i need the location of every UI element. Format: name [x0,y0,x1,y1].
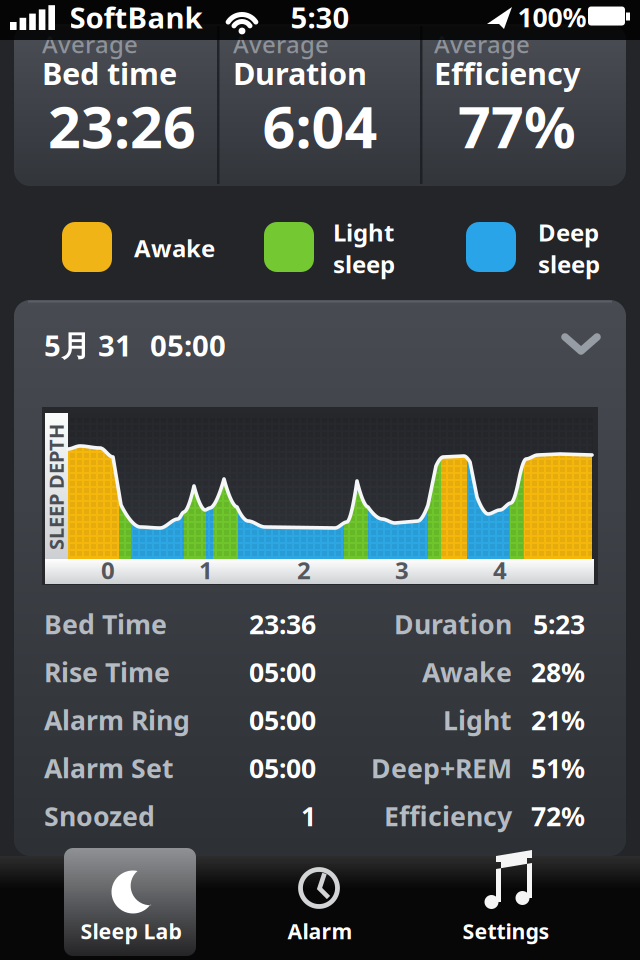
button[interactable]: Settings [406,848,606,960]
staticText: 21% [531,702,585,738]
staticText: 05:00 [249,654,316,690]
staticText: Efficiency [384,798,512,834]
staticText: Alarm [287,917,352,945]
staticText: 05:00 [249,702,316,738]
staticText: Alarm Set [44,750,174,786]
staticText: 2 [297,554,311,586]
staticText: Average [42,28,138,60]
staticText: 5:23 [533,606,585,642]
staticText: Awake [422,654,512,690]
staticText: Rise Time [44,654,170,690]
staticText: 5月 31 [44,325,132,364]
staticText: Duration [394,606,512,642]
staticText: 1 [301,798,316,834]
staticText: Bed Time [44,606,167,642]
staticText: 5:30 [290,0,349,36]
staticText: 51% [531,750,585,786]
staticText: 1 [199,554,213,586]
staticText: 6:04 [262,88,377,164]
staticText: 23:36 [249,606,316,642]
staticText: Bed time [42,53,177,93]
staticText: SLEEP DEPTH [0,474,119,500]
staticText: 3 [395,554,409,586]
staticText: 05:00 [150,325,226,364]
staticText: Average [434,28,530,60]
staticText: Awake [134,232,215,264]
staticText: Average [233,28,329,60]
button[interactable]: Alarm [220,848,420,960]
staticText: 28% [531,654,585,690]
button[interactable]: 5月 31 [14,315,626,375]
staticText: 4 [493,554,507,586]
staticText: 05:00 [249,750,316,786]
staticText: 77% [458,88,576,164]
staticText: Snoozed [44,798,155,834]
staticText: Settings [462,917,549,945]
staticText: 100% [517,0,586,35]
staticText: Sleep Lab [80,917,181,945]
staticText: Light sleep [333,216,395,280]
staticText: Deep sleep [538,216,600,280]
button[interactable]: Sleep Lab [30,848,230,960]
staticText: Duration [233,53,367,93]
staticText: 0 [101,554,115,586]
staticText: 72% [531,798,585,834]
staticText: 23:26 [48,88,196,164]
staticText: Deep+REM [371,750,512,786]
staticText: Alarm Ring [44,702,190,738]
staticText: SoftBank [69,0,202,36]
staticText: Efficiency [434,53,581,93]
staticText: Light [443,702,512,738]
